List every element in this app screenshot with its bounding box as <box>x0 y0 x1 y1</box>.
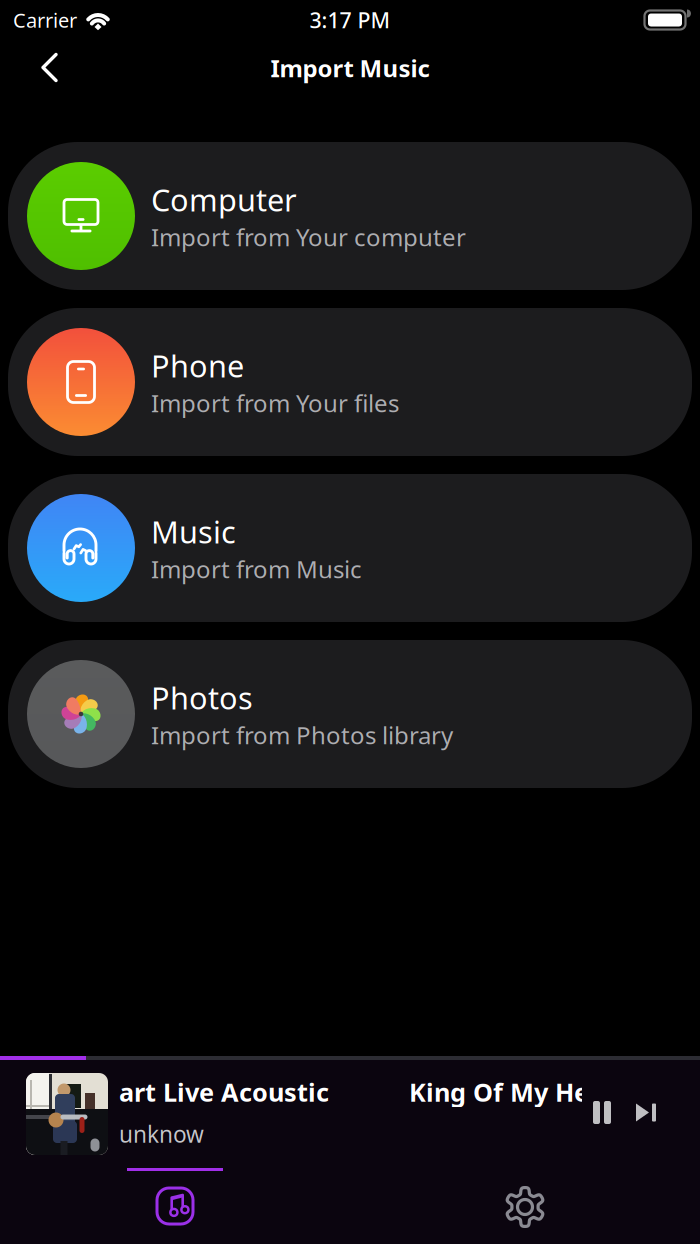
staticText: Photos <box>151 677 253 718</box>
staticText: King Of My Heart Live Acou <box>409 1075 700 1109</box>
button[interactable]: Next <box>628 1093 664 1132</box>
staticText: Import from Photos library <box>151 719 453 751</box>
staticText: Music <box>151 511 236 552</box>
button[interactable]: Library <box>0 1168 350 1244</box>
button[interactable]: Photos <box>8 640 692 788</box>
staticText: Phone <box>151 345 244 386</box>
staticText: Import from Your files <box>151 387 399 419</box>
button[interactable]: Back <box>25 40 75 95</box>
staticText: Import Music <box>270 52 429 84</box>
button[interactable]: Pause <box>585 1093 619 1132</box>
staticText: unknow <box>119 1119 204 1149</box>
staticText: Import from Your computer <box>151 221 466 253</box>
button[interactable]: Settings <box>350 1168 700 1244</box>
staticText: 3:17 PM <box>309 6 390 34</box>
staticText: Carrier <box>13 7 77 33</box>
button[interactable]: Music <box>8 474 692 622</box>
staticText: art Live Acoustic <box>119 1075 329 1109</box>
staticText: Computer <box>151 179 297 220</box>
staticText: Import from Music <box>151 553 362 585</box>
button[interactable]: Computer <box>8 142 692 290</box>
button[interactable]: Phone <box>8 308 692 456</box>
